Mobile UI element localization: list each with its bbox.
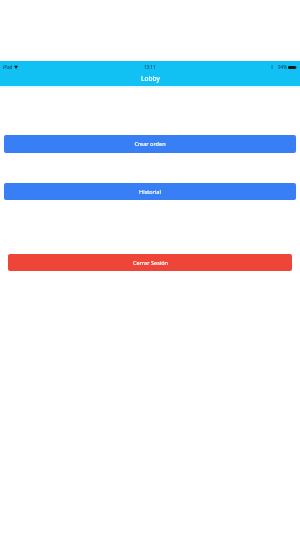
staticText: Lobby — [141, 74, 160, 83]
staticText: Historial — [139, 188, 161, 196]
button[interactable]: Crear orden — [4, 135, 296, 153]
staticText: iPad — [3, 64, 13, 70]
other: Wi-Fi — [14, 65, 18, 69]
staticText: Cerrar Sesión — [133, 259, 168, 267]
staticText: 94% — [278, 64, 287, 70]
button[interactable]: Cerrar Sesión — [8, 254, 292, 271]
button[interactable]: Historial — [4, 183, 296, 200]
other: Battery 94 percent — [288, 66, 297, 69]
staticText: 13:11 — [144, 64, 156, 70]
staticText: Crear orden — [134, 140, 166, 148]
other: Rotation lock — [271, 65, 273, 69]
